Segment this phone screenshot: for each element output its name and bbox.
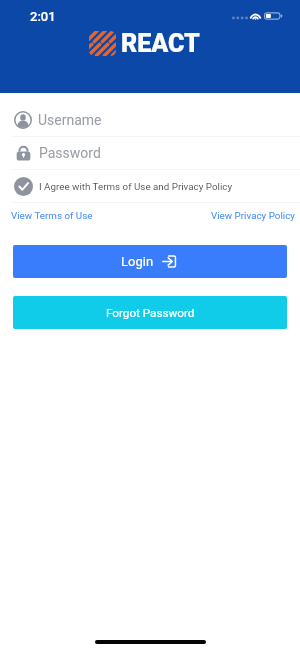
- button[interactable]: Forgot Password: [13, 296, 287, 329]
- staticText: REACT: [121, 29, 200, 58]
- button[interactable]: Password: [0, 137, 300, 170]
- staticText: I Agree with Terms of Use and Privacy Po…: [39, 181, 233, 192]
- staticText: Password: [39, 145, 101, 161]
- staticText: Login: [121, 254, 154, 269]
- button[interactable]: Username: [0, 104, 300, 137]
- button[interactable]: Login: [13, 245, 287, 278]
- button[interactable]: I Agree with Terms of Use and Privacy Po…: [0, 170, 300, 203]
- button[interactable]: View Privacy Policy: [211, 208, 295, 223]
- staticText: 2:01: [30, 9, 56, 24]
- staticText: Forgot Password: [106, 306, 195, 320]
- other: Login: [162, 255, 176, 268]
- staticText: Username: [38, 112, 102, 128]
- button[interactable]: View Terms of Use: [11, 208, 93, 223]
